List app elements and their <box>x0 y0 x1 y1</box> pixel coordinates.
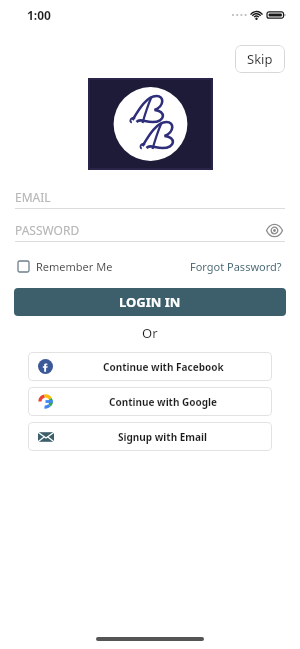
staticText: Continue with Google <box>109 395 218 409</box>
button[interactable]: Forgot Password? <box>190 259 282 274</box>
button[interactable]: Remember Me <box>18 259 113 274</box>
staticText: Or <box>142 324 158 342</box>
button[interactable]: Continue with Google <box>28 387 272 416</box>
button[interactable]: PASSWORD <box>15 219 285 241</box>
button[interactable]: LOGIN IN <box>14 288 286 316</box>
button[interactable]: EMAIL <box>15 186 285 208</box>
staticText: PASSWORD <box>15 222 80 238</box>
button[interactable]: Signup with Email <box>28 422 272 451</box>
staticText: Continue with Facebook <box>103 360 224 374</box>
staticText: LOGIN IN <box>119 293 181 311</box>
button[interactable]: Show password <box>263 219 285 241</box>
button[interactable]: Continue with Facebook <box>28 352 272 381</box>
staticText: Signup with Email <box>118 430 208 444</box>
staticText: Remember Me <box>36 259 113 274</box>
staticText: Forgot Password? <box>190 259 282 274</box>
staticText: Skip <box>247 50 273 68</box>
staticText: 1:00 <box>27 7 51 23</box>
button[interactable]: Skip <box>235 45 285 73</box>
staticText: EMAIL <box>15 189 51 205</box>
